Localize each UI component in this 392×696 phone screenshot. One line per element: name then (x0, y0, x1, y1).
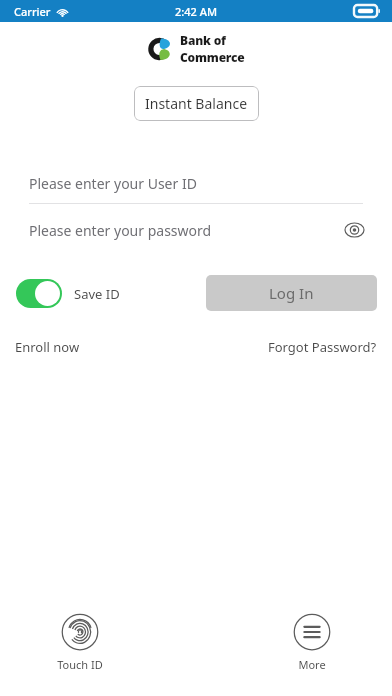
staticText: Touch ID (57, 657, 103, 672)
button[interactable]: Enroll now (15, 334, 80, 360)
button[interactable]: Please enter your password (0, 214, 392, 246)
staticText: Carrier (14, 4, 51, 19)
button[interactable]: Log In (206, 275, 377, 311)
staticText: 2:42 AM (175, 4, 218, 19)
button[interactable]: Touch ID login (40, 611, 120, 674)
staticText: Please enter your User ID (29, 174, 197, 193)
staticText: Save ID (74, 285, 120, 303)
button[interactable]: Save ID (16, 279, 120, 308)
staticText: Commerce (180, 49, 245, 65)
staticText: Forgot Password? (268, 338, 377, 356)
button[interactable]: Instant Balance (134, 86, 259, 121)
staticText: Log In (269, 283, 314, 303)
button[interactable]: Forgot Password? (268, 334, 377, 360)
button[interactable]: More options (272, 611, 352, 674)
staticText: Bank of (180, 32, 226, 48)
staticText: More (298, 657, 326, 672)
button[interactable]: Please enter your User ID (0, 167, 392, 199)
button[interactable]: Show password (342, 218, 366, 242)
staticText: Please enter your password (29, 221, 212, 240)
staticText: Instant Balance (145, 94, 248, 113)
staticText: Enroll now (15, 338, 80, 356)
